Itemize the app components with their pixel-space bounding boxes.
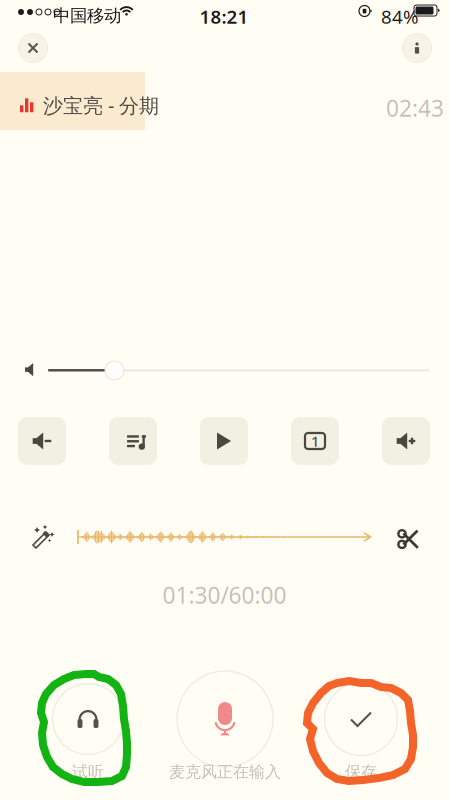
staticText: 1: [311, 431, 319, 451]
button[interactable]: Close: [11, 26, 55, 70]
staticText: 01:30/60:00: [162, 580, 286, 610]
button[interactable]: More info: [395, 26, 439, 70]
button[interactable]: Volume down: [18, 417, 66, 465]
staticText: 试听: [72, 762, 104, 782]
button[interactable]: Play: [200, 417, 248, 465]
button[interactable]: Playlist: [109, 417, 157, 465]
staticText: 保存: [345, 762, 377, 782]
staticText: 中国移动: [53, 5, 121, 26]
staticText: 02:43: [386, 93, 444, 123]
button[interactable]: Volume up: [382, 417, 430, 465]
button[interactable]: Effects: [29, 523, 59, 553]
staticText: 84%: [381, 4, 419, 29]
button[interactable]: Preview: [18, 667, 158, 795]
staticText: 沙宝亮 - 分期: [43, 92, 159, 119]
button[interactable]: Repeat one: [291, 417, 339, 465]
staticText: 麦克风正在输入: [169, 762, 281, 782]
staticText: 18:21: [199, 4, 248, 29]
button[interactable]: Trim: [396, 526, 422, 552]
button[interactable]: Save: [291, 667, 431, 795]
button[interactable]: Microphone: [155, 667, 295, 795]
